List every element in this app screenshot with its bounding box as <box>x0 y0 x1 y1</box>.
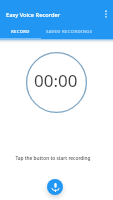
button[interactable]: RECORD <box>0 24 41 39</box>
button[interactable]: More options <box>98 7 113 22</box>
button[interactable]: SAVED RECORDINGS <box>41 24 98 39</box>
staticText: RECORD <box>11 28 30 34</box>
staticText: Tap the button to start recording <box>15 155 91 162</box>
button[interactable]: Start recording <box>47 179 63 195</box>
staticText: 00:00 <box>34 69 78 92</box>
staticText: SAVED RECORDINGS <box>46 28 93 34</box>
staticText: Easy Voice Recorder <box>6 11 61 19</box>
